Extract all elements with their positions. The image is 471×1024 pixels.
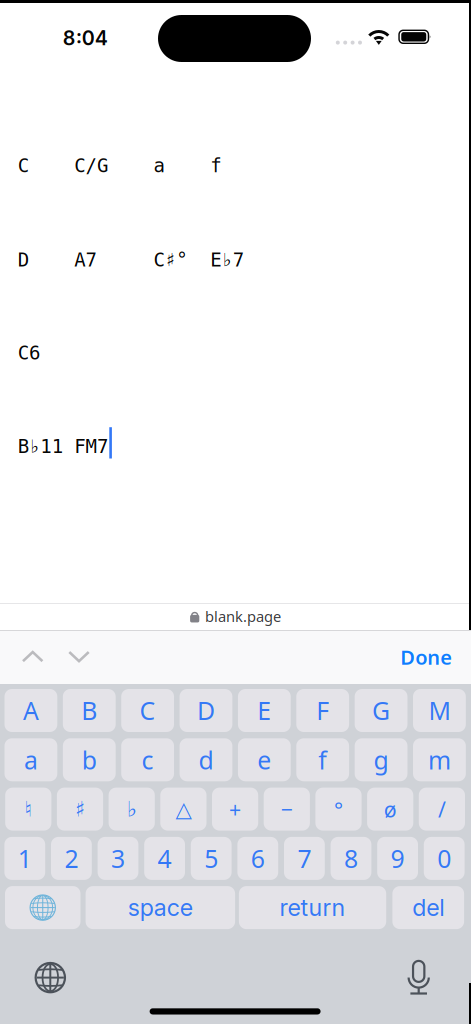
button[interactable]: − bbox=[264, 788, 310, 831]
staticText: ø bbox=[384, 795, 397, 824]
button[interactable]: 3 bbox=[98, 837, 138, 880]
staticText: M bbox=[428, 694, 450, 727]
button[interactable]: f bbox=[296, 738, 349, 781]
staticText: E bbox=[257, 694, 271, 727]
staticText: space bbox=[128, 893, 193, 922]
staticText: c bbox=[142, 743, 154, 777]
staticText: b bbox=[82, 743, 97, 777]
staticText: ° bbox=[334, 795, 343, 824]
staticText: C bbox=[140, 694, 156, 727]
button[interactable]: blank.page bbox=[0, 603, 471, 629]
staticText: B bbox=[81, 694, 97, 727]
button[interactable]: G bbox=[355, 689, 407, 732]
button[interactable]: M bbox=[413, 689, 466, 732]
button[interactable]: Done bbox=[391, 631, 461, 683]
staticText: m bbox=[428, 743, 451, 777]
staticText: B♭11 FM7 bbox=[18, 435, 108, 458]
button[interactable]: Next field bbox=[53, 631, 105, 683]
staticText: 3 bbox=[111, 841, 125, 875]
button[interactable]: d bbox=[180, 738, 232, 781]
staticText: 7 bbox=[297, 841, 311, 875]
button[interactable]: E bbox=[238, 689, 291, 732]
staticText: C C/G a f bbox=[18, 154, 221, 177]
button[interactable]: △ bbox=[160, 788, 206, 831]
button[interactable]: 9 bbox=[377, 837, 418, 880]
button[interactable]: 2 bbox=[51, 837, 92, 880]
staticText: blank.page bbox=[205, 607, 281, 626]
button[interactable]: return bbox=[239, 886, 386, 929]
staticText: g bbox=[374, 743, 389, 777]
button[interactable]: a bbox=[4, 738, 57, 781]
staticText: C6 bbox=[18, 342, 40, 364]
button[interactable]: 0 bbox=[424, 837, 465, 880]
button[interactable]: ° bbox=[315, 788, 362, 831]
staticText: ♭ bbox=[127, 797, 137, 821]
staticText: D A7 C♯° E♭7 bbox=[18, 249, 244, 271]
staticText: f bbox=[318, 743, 327, 777]
staticText: − bbox=[281, 795, 293, 824]
staticText: G bbox=[372, 694, 390, 727]
button[interactable]: ø bbox=[367, 788, 413, 831]
button[interactable]: c bbox=[121, 738, 174, 781]
staticText: 8 bbox=[344, 841, 358, 875]
button[interactable]: 4 bbox=[144, 837, 185, 880]
staticText: △ bbox=[175, 797, 191, 821]
button[interactable]: + bbox=[212, 788, 258, 831]
staticText: ♮ bbox=[24, 797, 32, 821]
staticText: 5 bbox=[204, 841, 218, 875]
staticText: F bbox=[316, 694, 329, 727]
staticText: 9 bbox=[391, 841, 405, 875]
button[interactable]: D bbox=[180, 689, 232, 732]
staticText: 2 bbox=[64, 841, 78, 875]
staticText: 8:04 bbox=[63, 26, 108, 50]
button[interactable]: ♭ bbox=[109, 788, 155, 831]
staticText: d bbox=[198, 743, 213, 777]
button[interactable]: g bbox=[355, 738, 407, 781]
staticText: D bbox=[197, 694, 215, 727]
button[interactable]: del bbox=[392, 886, 464, 929]
button[interactable]: 5 bbox=[191, 837, 232, 880]
button[interactable]: Next keyboard bbox=[5, 886, 80, 929]
button[interactable]: Switch keyboard bbox=[23, 951, 77, 1005]
button[interactable]: F bbox=[296, 689, 349, 732]
button[interactable]: 7 bbox=[284, 837, 325, 880]
button[interactable]: 8 bbox=[331, 837, 371, 880]
button[interactable]: Previous field bbox=[7, 631, 59, 683]
staticText: del bbox=[412, 893, 444, 922]
button[interactable]: b bbox=[63, 738, 116, 781]
button[interactable]: ♮ bbox=[5, 788, 51, 831]
staticText: a bbox=[24, 743, 38, 777]
staticText: / bbox=[438, 795, 446, 824]
button[interactable]: B bbox=[63, 689, 116, 732]
button[interactable]: / bbox=[419, 788, 465, 831]
button[interactable]: ♯ bbox=[57, 788, 103, 831]
button[interactable]: 1 bbox=[4, 837, 45, 880]
staticText: 4 bbox=[158, 841, 172, 875]
button[interactable]: 6 bbox=[237, 837, 278, 880]
staticText: ♯ bbox=[75, 797, 85, 821]
button[interactable]: Dictate bbox=[392, 951, 446, 1005]
staticText: Done bbox=[400, 644, 452, 670]
staticText: 0 bbox=[437, 841, 451, 875]
staticText: return bbox=[280, 893, 346, 922]
button[interactable]: C bbox=[121, 689, 174, 732]
staticText: 1 bbox=[18, 841, 32, 875]
staticText: A bbox=[23, 694, 39, 727]
button[interactable]: A bbox=[4, 689, 57, 732]
button[interactable]: m bbox=[413, 738, 466, 781]
staticText: 6 bbox=[251, 841, 265, 875]
button[interactable]: space bbox=[86, 886, 235, 929]
staticText: + bbox=[229, 795, 241, 824]
button[interactable]: e bbox=[238, 738, 291, 781]
staticText: e bbox=[257, 743, 271, 777]
